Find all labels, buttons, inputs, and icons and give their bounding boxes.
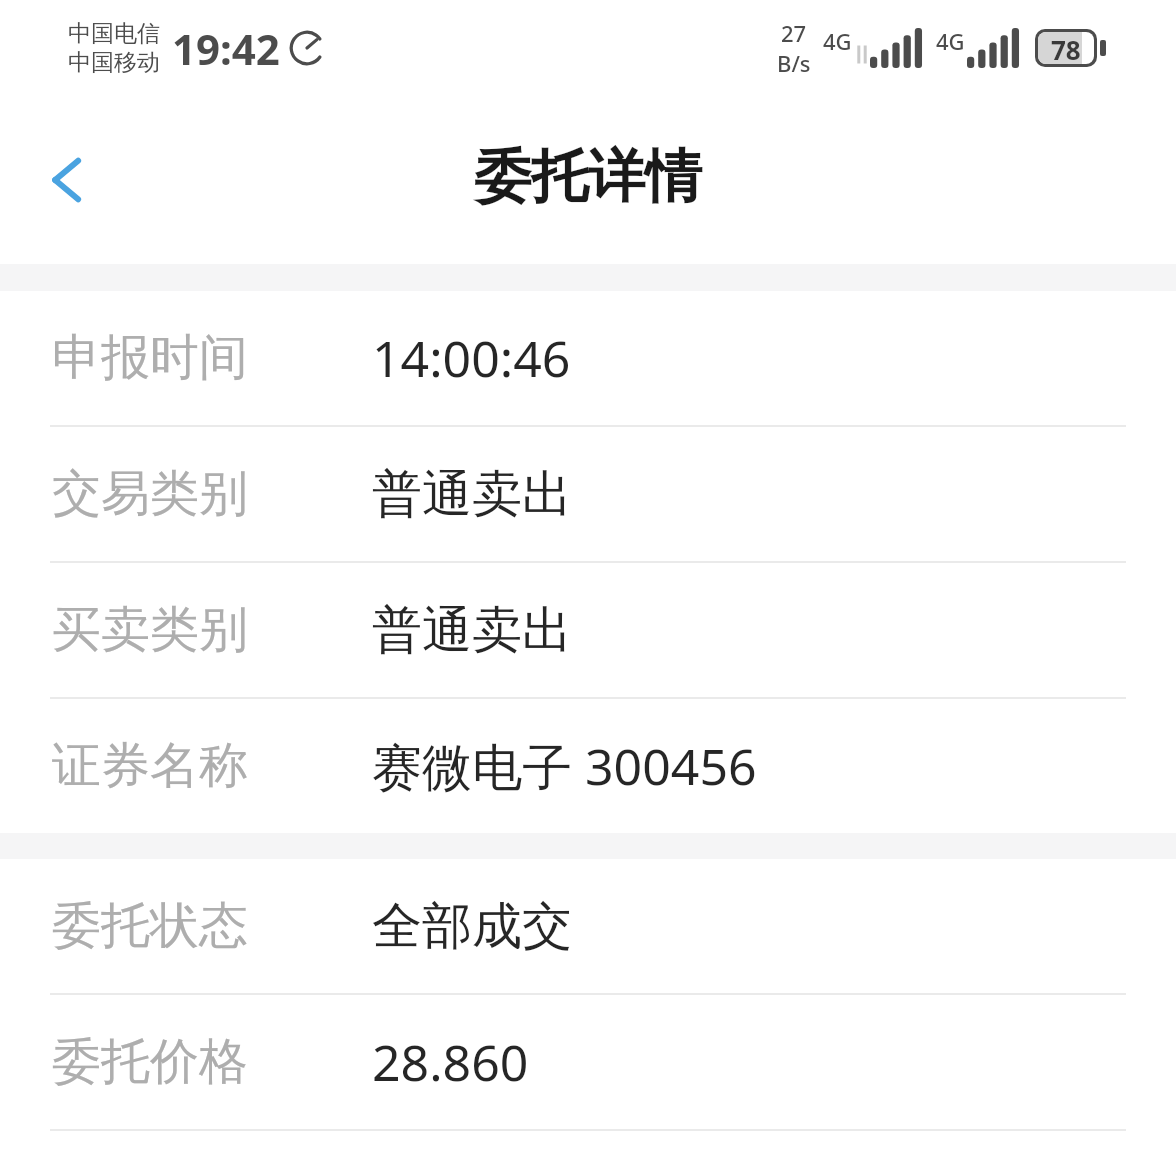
staticText: 委托详情 <box>474 141 702 213</box>
staticText: 委托状态 <box>52 895 248 957</box>
staticText: B/s <box>777 48 811 78</box>
staticText: 27 <box>781 18 807 48</box>
staticText: 赛微电子 300456 <box>372 732 757 800</box>
button[interactable]: 申报时间 <box>0 291 1176 425</box>
button[interactable]: 委托状态 <box>0 859 1176 993</box>
button[interactable]: 证券名称 <box>0 699 1176 833</box>
staticText: 普通卖出 <box>372 463 572 526</box>
staticText: 4G <box>936 26 965 56</box>
staticText: 14:00:46 <box>372 324 571 392</box>
staticText: 28.860 <box>372 1028 529 1096</box>
staticText: 普通卖出 <box>372 599 572 662</box>
button[interactable]: 交易类别 <box>0 427 1176 561</box>
staticText: 买卖类别 <box>52 599 248 661</box>
button[interactable]: 委托价格 <box>0 995 1176 1129</box>
staticText: 委托价格 <box>52 1031 248 1093</box>
staticText: 全部成交 <box>372 895 572 958</box>
staticText: 证券名称 <box>52 735 248 797</box>
staticText: 4G <box>823 26 852 56</box>
staticText: 19:42 <box>172 20 280 77</box>
staticText: 中国移动 <box>68 48 160 77</box>
staticText: 78 <box>1051 32 1081 64</box>
staticText: 交易类别 <box>52 463 248 525</box>
button[interactable]: Back <box>18 130 118 230</box>
staticText: 申报时间 <box>52 327 248 389</box>
staticText: 中国电信 <box>68 19 160 48</box>
button[interactable]: 买卖类别 <box>0 563 1176 697</box>
